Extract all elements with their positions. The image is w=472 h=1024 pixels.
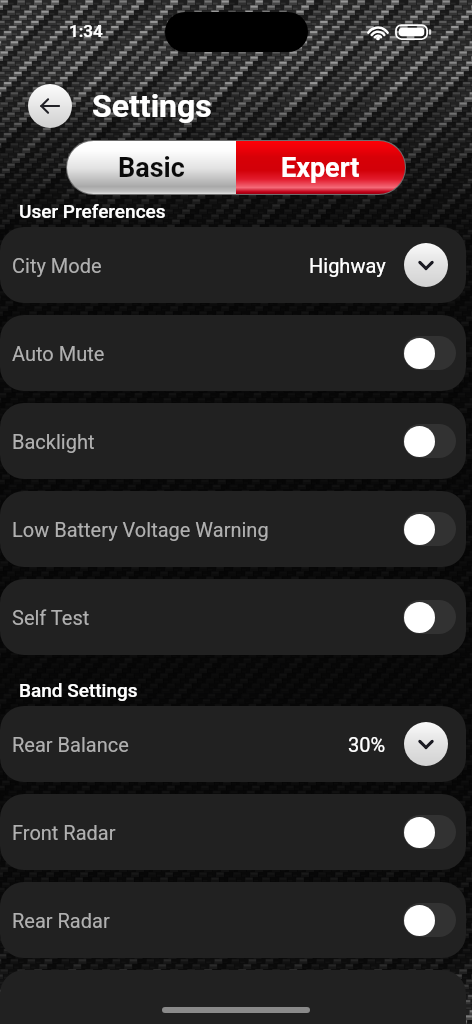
button[interactable]: Front Radar (0, 794, 466, 870)
button[interactable]: Toggle (403, 336, 456, 370)
staticText: 30% (348, 733, 386, 756)
staticText: Backlight (12, 430, 95, 453)
staticText: Settings (92, 87, 212, 125)
staticText: Basic (118, 152, 185, 184)
button[interactable]: Toggle (403, 600, 456, 634)
button[interactable]: Expand (404, 722, 448, 766)
button[interactable]: Self Test (0, 579, 466, 655)
button[interactable]: Auto Mute (0, 315, 466, 391)
button[interactable]: Backlight (0, 403, 466, 479)
staticText: Self Test (12, 606, 90, 629)
staticText: Expert (281, 152, 360, 184)
button[interactable] (0, 970, 466, 1024)
button[interactable]: Toggle (403, 903, 456, 937)
button[interactable]: Toggle (403, 424, 456, 458)
button[interactable]: Back (28, 84, 72, 128)
staticText: Front Radar (12, 821, 116, 844)
staticText: City Mode (12, 254, 102, 277)
button[interactable]: Basic (67, 141, 236, 194)
staticText: Highway (309, 254, 386, 277)
staticText: User Preferences (19, 200, 166, 222)
button[interactable]: Rear Radar (0, 882, 466, 958)
staticText: Rear Balance (12, 733, 129, 756)
button[interactable]: Expert (236, 141, 405, 194)
button[interactable]: Rear Balance (0, 706, 466, 782)
staticText: 1:34 (69, 21, 103, 41)
button[interactable]: Expand (404, 243, 448, 287)
button[interactable]: Low Battery Voltage Warning (0, 491, 466, 567)
staticText: Auto Mute (12, 342, 105, 365)
staticText: Rear Radar (12, 909, 110, 932)
button[interactable]: Toggle (403, 815, 456, 849)
staticText: Band Settings (19, 679, 138, 701)
staticText: Low Battery Voltage Warning (12, 518, 269, 541)
button[interactable]: City Mode (0, 227, 466, 303)
button[interactable]: Toggle (403, 512, 456, 546)
